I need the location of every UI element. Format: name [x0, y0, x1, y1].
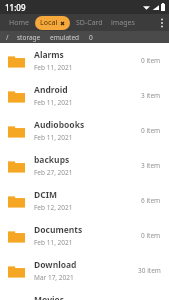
staticText: Download — [34, 259, 77, 271]
button[interactable]: Android — [0, 78, 169, 113]
staticText: Home — [9, 18, 29, 28]
button[interactable]: backups — [0, 148, 169, 183]
staticText: 0 — [89, 33, 93, 42]
staticText: Alarms — [34, 49, 64, 61]
button[interactable]: Home — [6, 16, 32, 30]
staticText: 0 item — [141, 126, 161, 135]
staticText: Documents — [34, 224, 83, 236]
button[interactable]: Local — [35, 16, 70, 30]
button[interactable]: images — [109, 16, 137, 30]
button[interactable]: Audiobooks — [0, 113, 169, 148]
button[interactable]: Alarms — [0, 43, 169, 78]
button[interactable]: Download — [0, 253, 169, 288]
other: Close tab — [60, 21, 65, 26]
staticText: Feb 27, 2021 — [34, 168, 73, 177]
button[interactable]: DCIM — [0, 183, 169, 218]
button[interactable]: storage — [17, 33, 41, 42]
staticText: emulated — [50, 33, 80, 42]
button[interactable]: More options — [155, 14, 169, 31]
staticText: backups — [34, 154, 70, 166]
staticText: 11:09 — [5, 2, 26, 13]
button[interactable]: emulated — [50, 33, 80, 42]
staticText: Audiobooks — [34, 119, 85, 131]
staticText: 30 item — [138, 266, 161, 275]
staticText: DCIM — [34, 189, 58, 201]
button[interactable]: Documents — [0, 218, 169, 253]
staticText: Feb 11, 2021 — [34, 238, 73, 247]
staticText: SD-Card — [76, 18, 103, 28]
staticText: Feb 11, 2021 — [34, 133, 73, 142]
staticText: Feb 12, 2021 — [34, 203, 73, 212]
staticText: Mar 17, 2021 — [34, 273, 74, 282]
staticText: Local — [40, 18, 58, 28]
staticText: Movies — [34, 294, 64, 300]
staticText: 0 item — [141, 56, 161, 65]
staticText: images — [111, 18, 135, 28]
button[interactable]: Movies — [0, 288, 169, 300]
staticText: Android — [34, 84, 68, 96]
staticText: 3 item — [141, 91, 161, 100]
staticText: 6 item — [141, 196, 161, 205]
staticText: storage — [17, 33, 41, 42]
staticText: 3 item — [141, 161, 161, 170]
button[interactable]: SD-Card — [74, 16, 105, 30]
staticText: / — [6, 33, 9, 42]
button[interactable]: 0 — [89, 33, 93, 42]
staticText: 0 item — [141, 231, 161, 240]
staticText: Feb 11, 2021 — [34, 63, 73, 72]
staticText: Feb 11, 2021 — [34, 98, 73, 107]
